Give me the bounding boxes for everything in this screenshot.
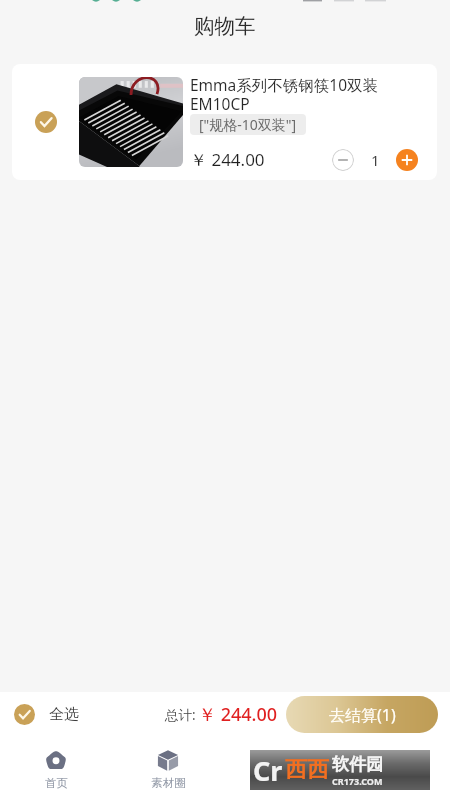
- button[interactable]: 素材圈: [112, 737, 224, 800]
- staticText: Emma系列不锈钢筷10双装EM10CP: [190, 74, 386, 114]
- staticText: ￥ 244.00: [190, 148, 265, 171]
- staticText: ￥ 244.00: [198, 702, 278, 727]
- staticText: 去结算(1): [329, 704, 396, 726]
- staticText: Cr: [253, 752, 283, 789]
- staticText: 购物车: [194, 13, 256, 39]
- staticText: CR173.COM: [332, 775, 383, 787]
- button[interactable]: Increase quantity: [396, 149, 418, 171]
- button[interactable]: Select item: [12, 64, 437, 180]
- staticText: 素材圈: [151, 776, 186, 790]
- button[interactable]: 全选: [14, 704, 79, 725]
- button[interactable]: 去结算(1): [286, 696, 438, 733]
- staticText: ["规格-10双装"]: [199, 115, 297, 134]
- button[interactable]: 首页: [0, 737, 112, 800]
- staticText: 全选: [49, 705, 79, 724]
- staticText: 软件园: [332, 754, 383, 775]
- button[interactable]: Decrease quantity: [332, 149, 354, 171]
- staticText: 西西: [285, 756, 329, 784]
- staticText: 总计:: [165, 706, 196, 724]
- staticText: 1: [371, 150, 380, 170]
- staticText: 首页: [45, 776, 68, 790]
- button[interactable]: Select item: [12, 64, 79, 180]
